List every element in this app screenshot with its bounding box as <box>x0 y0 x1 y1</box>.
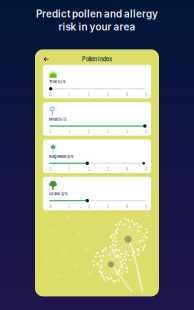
staticText: Pollen Index <box>82 56 112 62</box>
staticText: 3 <box>107 167 110 172</box>
staticText: 4 <box>126 167 129 172</box>
staticText: 2 <box>87 204 90 209</box>
staticText: 2 <box>87 130 90 135</box>
staticText: 5 <box>145 204 148 209</box>
staticText: 3 <box>107 92 110 97</box>
staticText: risk in your area <box>58 21 135 33</box>
staticText: 0 <box>49 167 52 172</box>
staticText: 0 <box>49 204 52 209</box>
staticText: 1 <box>68 167 70 172</box>
staticText: Ragweed 2/5 <box>49 154 74 159</box>
staticText: 5 <box>145 92 148 97</box>
staticText: Mold 5/5 <box>49 117 67 122</box>
staticText: 4 <box>126 92 129 97</box>
staticText: Tree 0/5 <box>49 79 66 84</box>
staticText: Predict pollen and allergy <box>36 8 158 20</box>
staticText: 3 <box>107 130 110 135</box>
staticText: 3 <box>107 204 110 209</box>
staticText: 1 <box>68 92 70 97</box>
staticText: 5 <box>145 130 148 135</box>
button[interactable]: Mold 5/5 <box>43 102 151 136</box>
staticText: 0 <box>49 130 52 135</box>
staticText: 4 <box>126 204 129 209</box>
staticText: 1 <box>68 204 70 209</box>
button[interactable]: Back <box>35 53 53 65</box>
staticText: 2 <box>87 92 90 97</box>
staticText: 1 <box>68 130 70 135</box>
staticText: 2 <box>87 167 90 172</box>
button[interactable]: Grass 2/5 <box>43 177 151 210</box>
button[interactable]: Tree 0/5 <box>43 65 151 98</box>
staticText: 5 <box>145 167 148 172</box>
button[interactable]: Ragweed 2/5 <box>43 139 151 173</box>
staticText: Grass 2/5 <box>49 191 68 196</box>
staticText: 4 <box>126 130 129 135</box>
staticText: 0 <box>49 92 52 97</box>
